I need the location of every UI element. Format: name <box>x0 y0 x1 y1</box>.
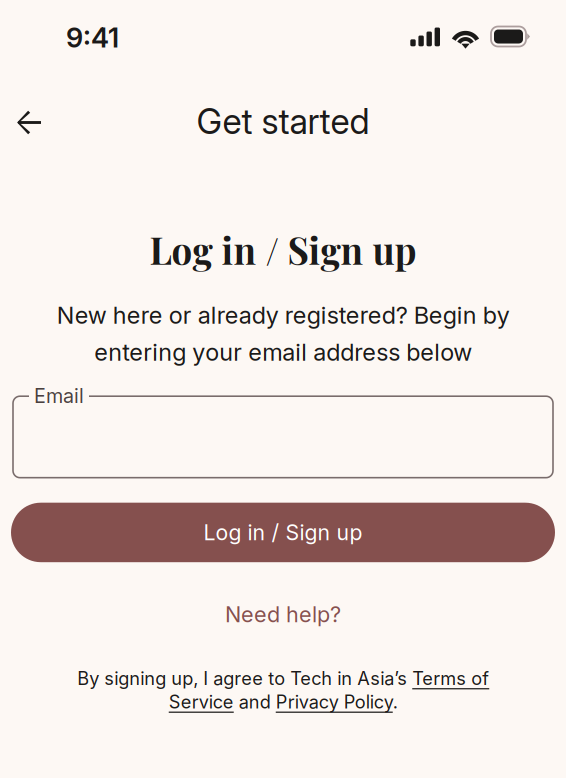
staticText: Log in / Sign up <box>149 225 416 274</box>
button[interactable]: Back <box>6 99 52 145</box>
staticText: By signing up, I agree to Tech in Asia’s… <box>77 667 489 713</box>
staticText: Email <box>34 384 84 408</box>
button[interactable]: Need help? <box>213 595 353 633</box>
staticText: 9:41 <box>66 21 119 54</box>
button[interactable]: Log in / Sign up <box>11 503 555 562</box>
staticText: Need help? <box>225 601 341 627</box>
staticText: New here or already registered? Begin by… <box>56 301 509 366</box>
staticText: Get started <box>196 100 369 142</box>
staticText: Log in / Sign up <box>203 519 362 545</box>
